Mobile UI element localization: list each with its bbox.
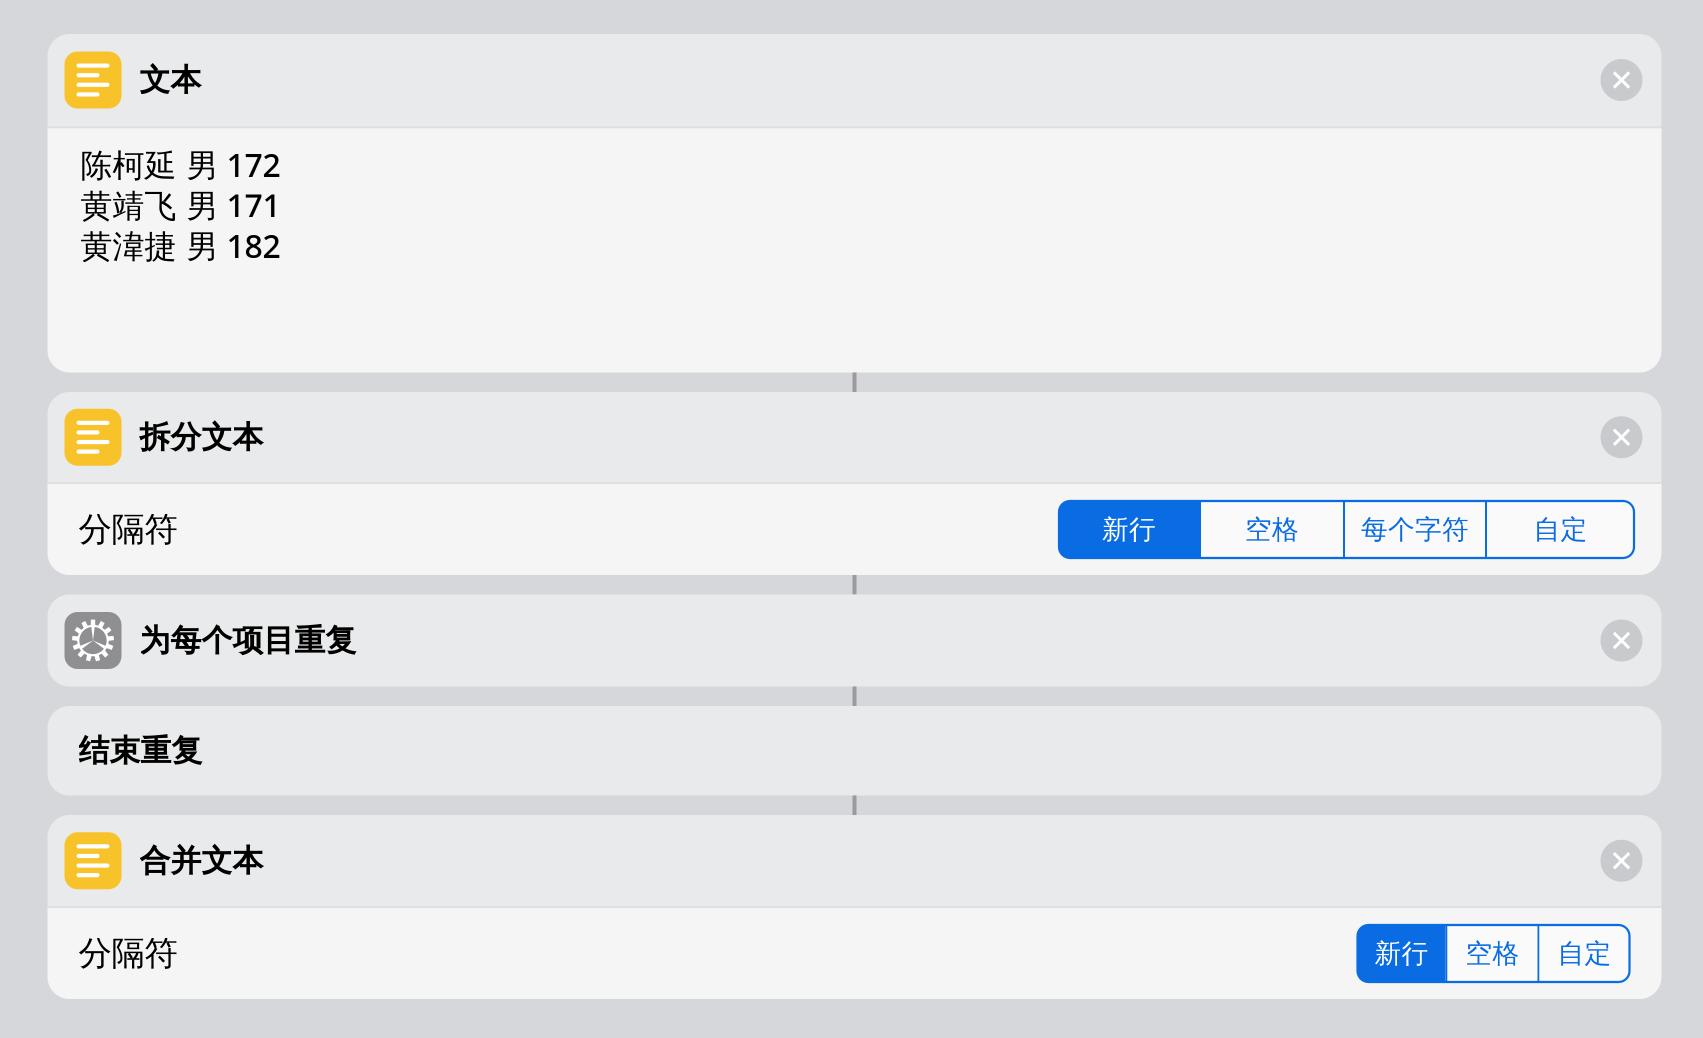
button[interactable]: 自定 (1485, 501, 1634, 558)
button[interactable]: 每个字符 (1343, 501, 1485, 558)
button[interactable]: Remove action (1600, 619, 1642, 661)
staticText: 结束重复 (78, 732, 202, 770)
staticText: 自定 (1557, 937, 1611, 970)
staticText: 新行 (1374, 937, 1428, 970)
button[interactable]: 文本 (47, 34, 1661, 372)
button[interactable]: 新行 (1357, 925, 1445, 982)
staticText: 自定 (1533, 513, 1587, 546)
staticText: 分隔符 (78, 509, 177, 550)
staticText: 陈柯延 男 172 (80, 143, 280, 186)
staticText: 分隔符 (78, 933, 177, 974)
button[interactable]: Remove action (1600, 840, 1642, 882)
staticText: 拆分文本 (139, 418, 263, 456)
staticText: 空格 (1465, 937, 1519, 970)
staticText: 为每个项目重复 (139, 622, 356, 659)
button[interactable]: Remove action (1600, 416, 1642, 458)
staticText: 空格 (1245, 513, 1299, 546)
button[interactable]: 结束重复 (47, 706, 1661, 795)
button[interactable]: 新行 (1059, 501, 1199, 558)
staticText: 新行 (1102, 513, 1156, 546)
staticText: 文本 (139, 61, 201, 99)
button[interactable]: 合并文本 (47, 815, 1661, 999)
button[interactable]: 空格 (1199, 501, 1343, 558)
staticText: 合并文本 (139, 842, 263, 880)
button[interactable]: 自定 (1537, 925, 1629, 982)
button[interactable]: 空格 (1445, 925, 1537, 982)
button[interactable]: Remove action (1600, 59, 1642, 101)
button[interactable]: 为每个项目重复 (47, 594, 1661, 686)
staticText: 黄湋捷 男 182 (80, 224, 280, 267)
staticText: 黄靖飞 男 171 (80, 184, 280, 226)
staticText: 每个字符 (1361, 513, 1469, 546)
button[interactable]: 拆分文本 (47, 392, 1661, 575)
